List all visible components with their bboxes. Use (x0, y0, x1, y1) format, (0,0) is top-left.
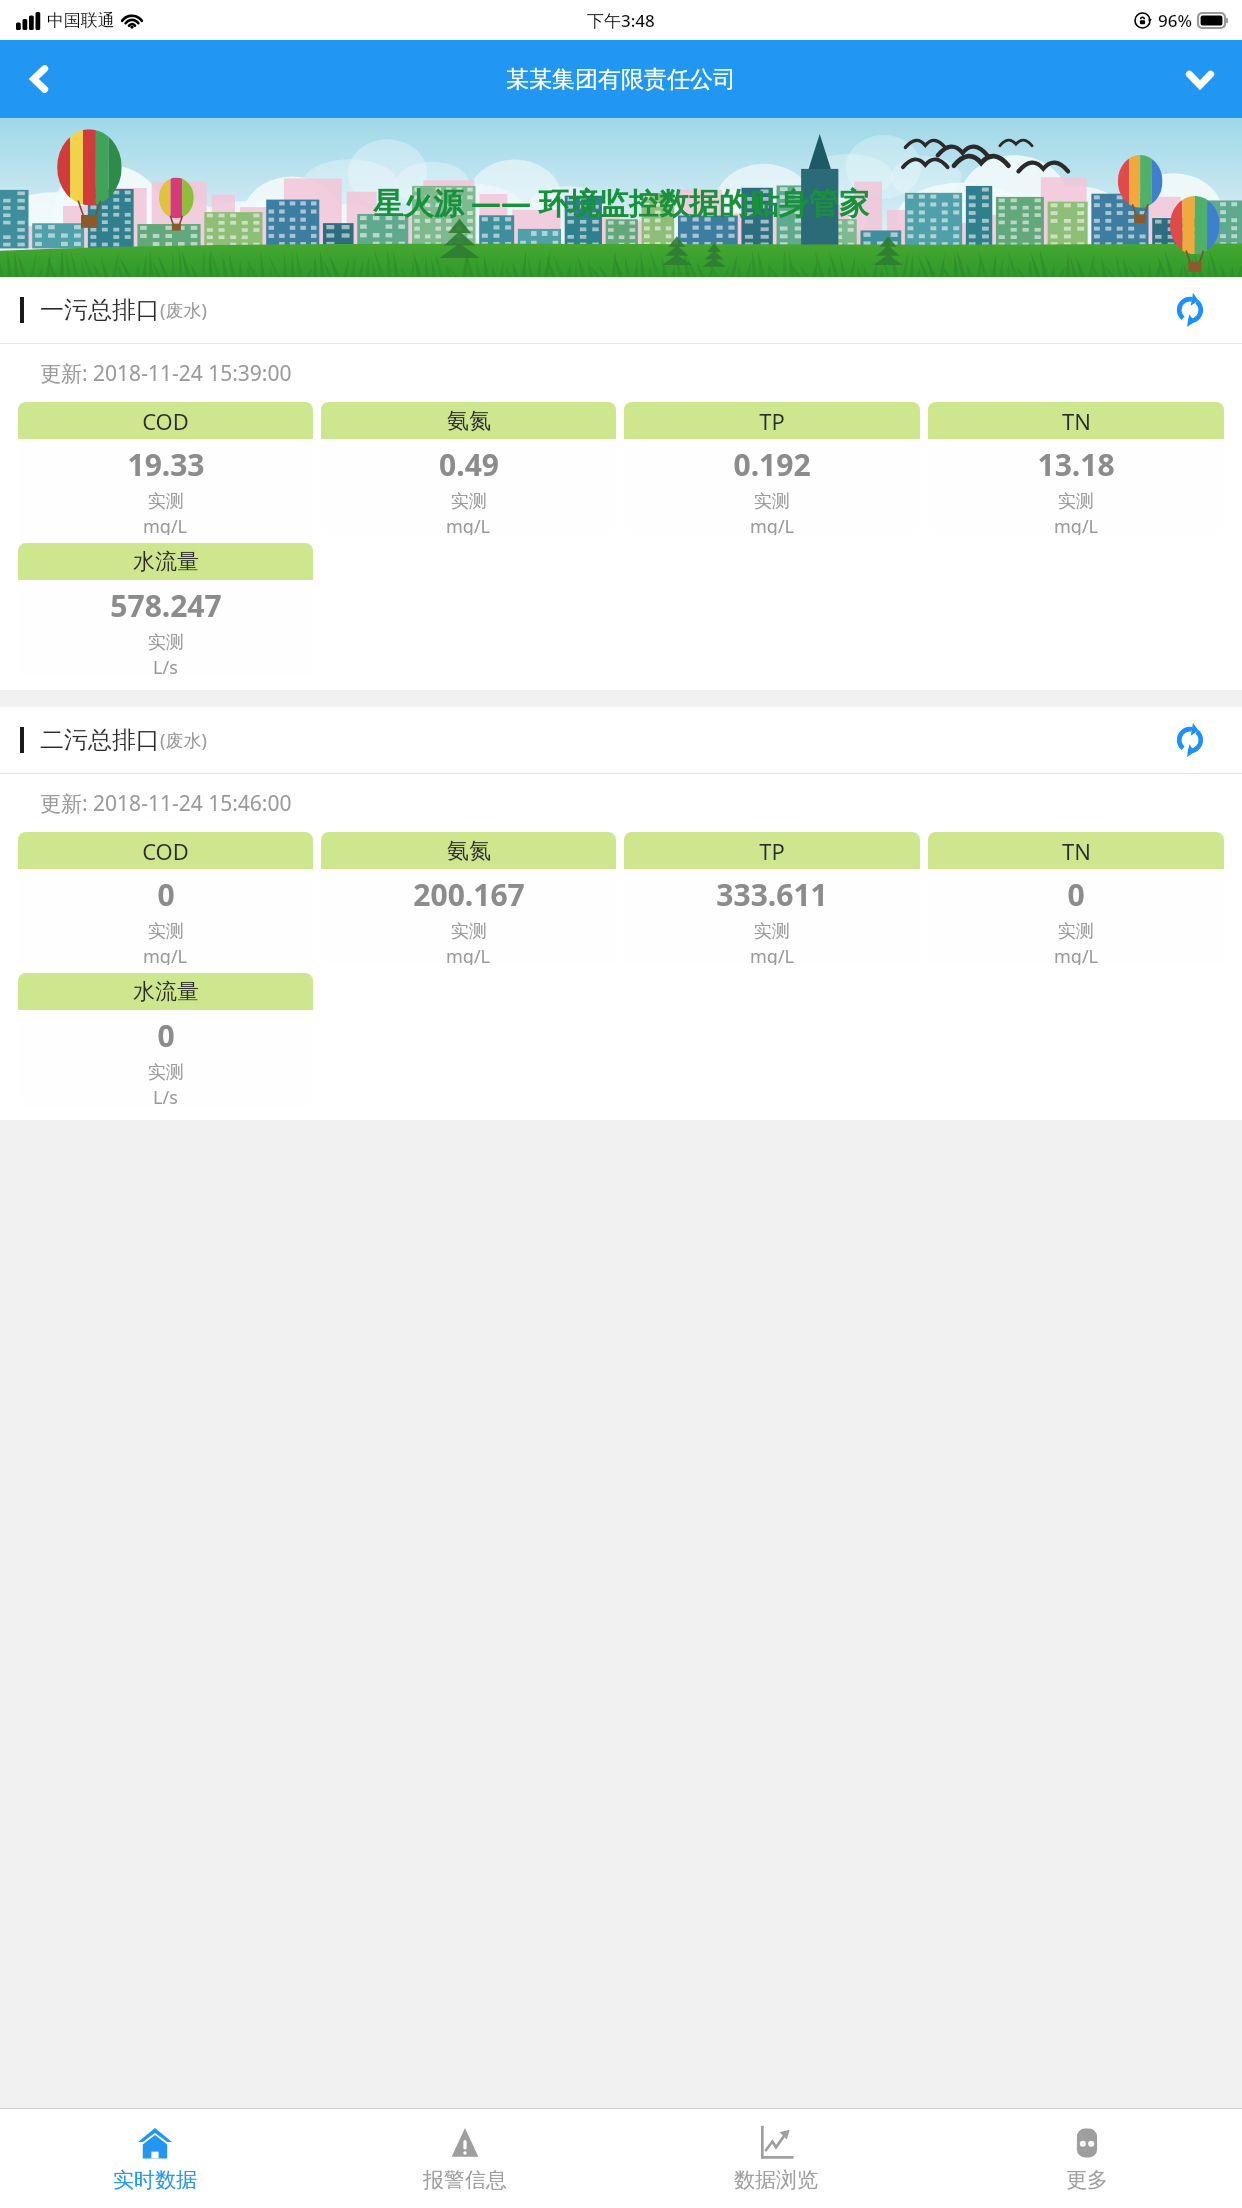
button[interactable]: 一污总排口 (0, 277, 1242, 343)
button[interactable]: Refresh (1160, 710, 1220, 770)
staticText: mg/L (446, 514, 491, 535)
button[interactable]: 氨氮 (321, 832, 616, 965)
button[interactable]: Expand company list (1168, 47, 1232, 111)
staticText: 0.49 (439, 444, 499, 485)
staticText: L/s (153, 655, 178, 676)
button[interactable]: 氨氮 (321, 402, 616, 535)
button[interactable]: TN (928, 402, 1224, 535)
staticText: 水流量 (133, 548, 199, 576)
staticText: 水流量 (133, 978, 199, 1006)
staticText: TN (1062, 406, 1091, 436)
staticText: 0 (157, 1015, 175, 1056)
staticText: 0 (1067, 874, 1085, 915)
staticText: 19.33 (127, 444, 205, 485)
staticText: 实测 (754, 920, 790, 943)
staticText: mg/L (1054, 514, 1099, 535)
staticText: 数据浏览 (734, 2167, 818, 2193)
button[interactable]: COD (18, 832, 313, 965)
button[interactable]: Back (8, 47, 72, 111)
button[interactable]: 水流量 (18, 543, 313, 676)
button[interactable]: TP (624, 402, 920, 535)
staticText: COD (142, 836, 189, 866)
button[interactable]: TP (624, 832, 920, 965)
staticText: 578.247 (110, 585, 222, 626)
staticText: 200.167 (413, 874, 525, 915)
staticText: 更新: 2018-11-24 15:39:00 (40, 359, 292, 388)
staticText: mg/L (446, 944, 491, 965)
staticText: mg/L (750, 514, 795, 535)
button[interactable]: 二污总排口 (0, 707, 1242, 773)
staticText: mg/L (143, 944, 188, 965)
staticText: TP (759, 836, 785, 866)
staticText: 实测 (1058, 920, 1094, 943)
button[interactable]: 数据浏览 (620, 2109, 931, 2208)
staticText: 实测 (451, 490, 487, 513)
staticText: 实测 (148, 920, 184, 943)
staticText: 中国联通 (47, 10, 115, 31)
staticText: mg/L (1054, 944, 1099, 965)
staticText: 实时数据 (113, 2167, 197, 2193)
staticText: 333.611 (716, 874, 828, 915)
staticText: 0.192 (733, 444, 811, 485)
staticText: 更新: 2018-11-24 15:46:00 (40, 789, 292, 818)
button[interactable]: 实时数据 (0, 2109, 310, 2208)
staticText: 星火源 —— 环境监控数据的贴身管家 (373, 182, 869, 223)
button[interactable]: 更多 (931, 2109, 1242, 2208)
staticText: 96% (1158, 9, 1192, 32)
button[interactable]: 报警信息 (310, 2109, 620, 2208)
staticText: 13.18 (1037, 444, 1115, 485)
staticText: 实测 (148, 631, 184, 654)
staticText: COD (142, 406, 189, 436)
staticText: (废水) (160, 298, 207, 323)
staticText: 下午3:48 (587, 9, 655, 32)
staticText: 实测 (1058, 490, 1094, 513)
staticText: mg/L (143, 514, 188, 535)
button[interactable]: 水流量 (18, 973, 313, 1106)
staticText: 实测 (754, 490, 790, 513)
button[interactable]: Refresh (1160, 280, 1220, 340)
staticText: mg/L (750, 944, 795, 965)
staticText: 实测 (451, 920, 487, 943)
staticText: 报警信息 (423, 2167, 507, 2193)
staticText: TP (759, 406, 785, 436)
staticText: 实测 (148, 1061, 184, 1084)
staticText: 某某集团有限责任公司 (506, 65, 736, 94)
staticText: 0 (157, 874, 175, 915)
staticText: 一污总排口 (40, 295, 160, 325)
button[interactable]: TN (928, 832, 1224, 965)
staticText: 氨氮 (447, 407, 491, 435)
staticText: L/s (153, 1085, 178, 1106)
staticText: 实测 (148, 490, 184, 513)
staticText: TN (1062, 836, 1091, 866)
staticText: 更多 (1066, 2167, 1108, 2193)
staticText: (废水) (160, 728, 207, 753)
staticText: 氨氮 (447, 837, 491, 865)
staticText: 二污总排口 (40, 725, 160, 755)
button[interactable]: COD (18, 402, 313, 535)
